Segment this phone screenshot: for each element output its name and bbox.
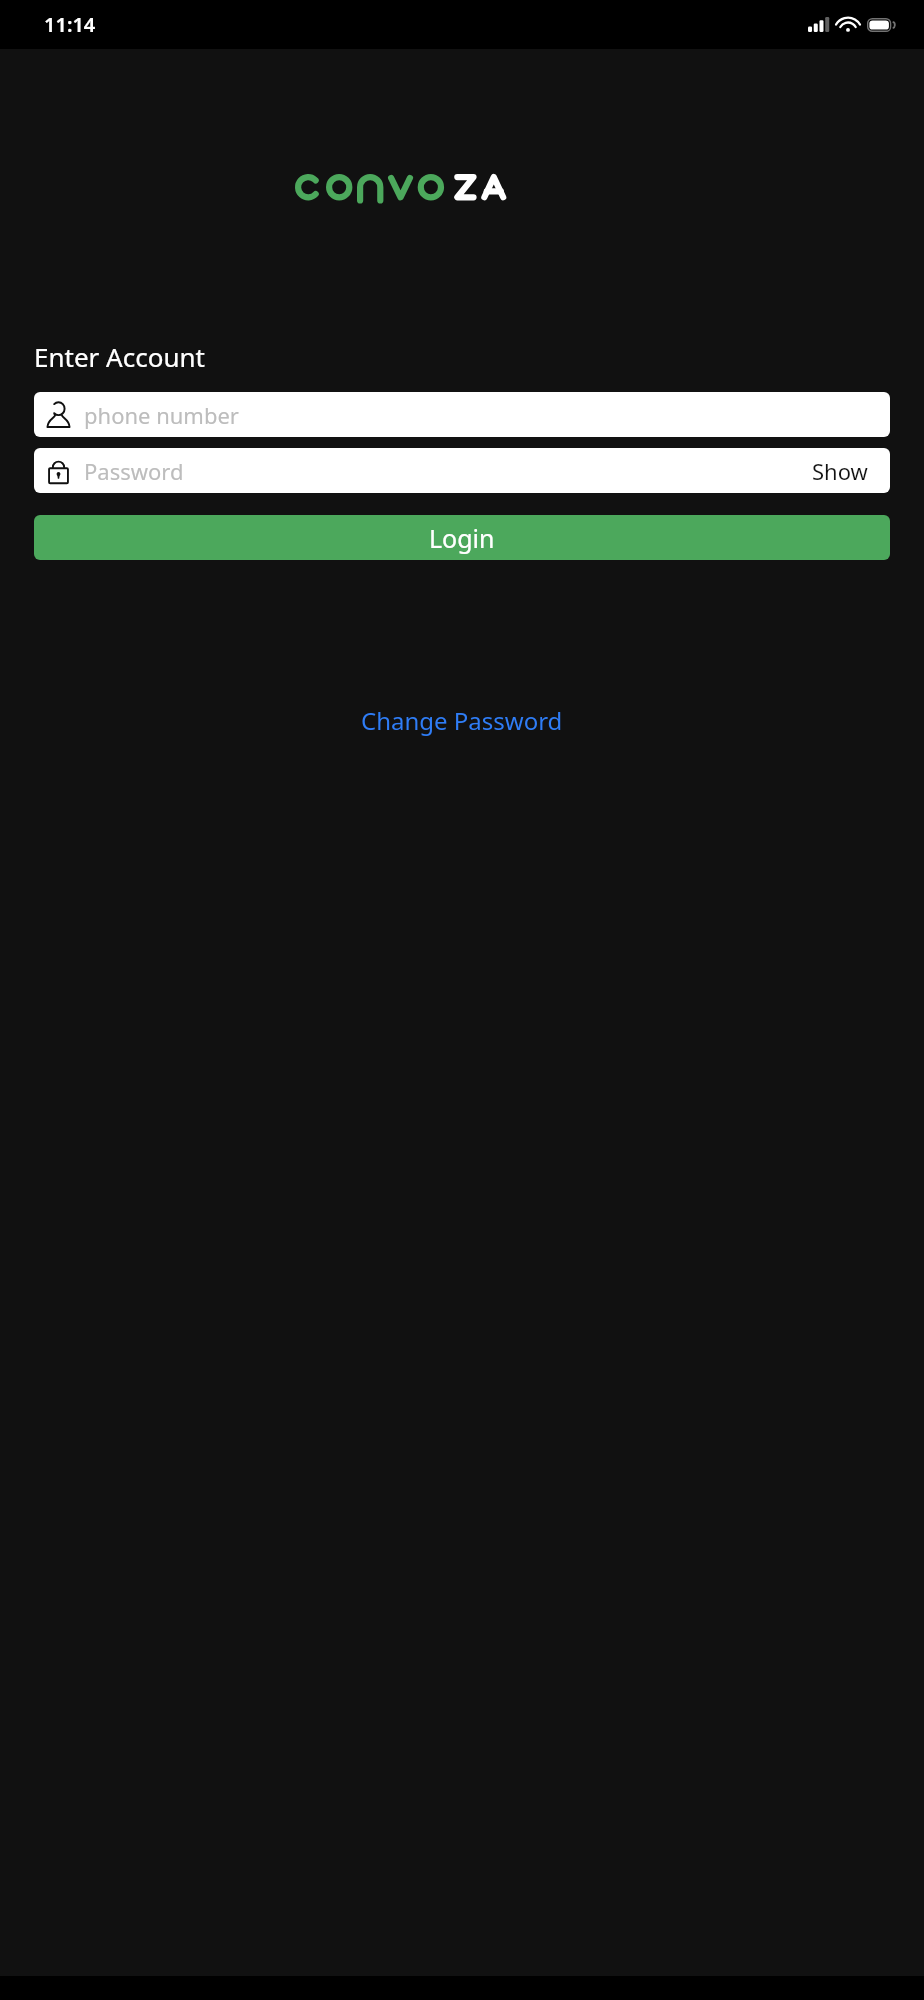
other: Password <box>47 457 70 485</box>
staticText: phone number <box>84 400 239 430</box>
staticText: 11:14 <box>44 11 96 38</box>
button[interactable]: Account <box>34 392 890 437</box>
staticText: Change Password <box>361 704 563 737</box>
staticText: Enter Account <box>34 339 205 374</box>
button[interactable]: Show <box>808 452 872 490</box>
staticText: Password <box>84 456 808 486</box>
staticText: Login <box>429 521 495 555</box>
button[interactable]: Password <box>34 448 890 493</box>
other: Account <box>47 402 70 428</box>
button[interactable]: Change Password <box>351 698 573 743</box>
button[interactable]: Login <box>34 515 890 560</box>
staticText: Show <box>812 456 868 486</box>
